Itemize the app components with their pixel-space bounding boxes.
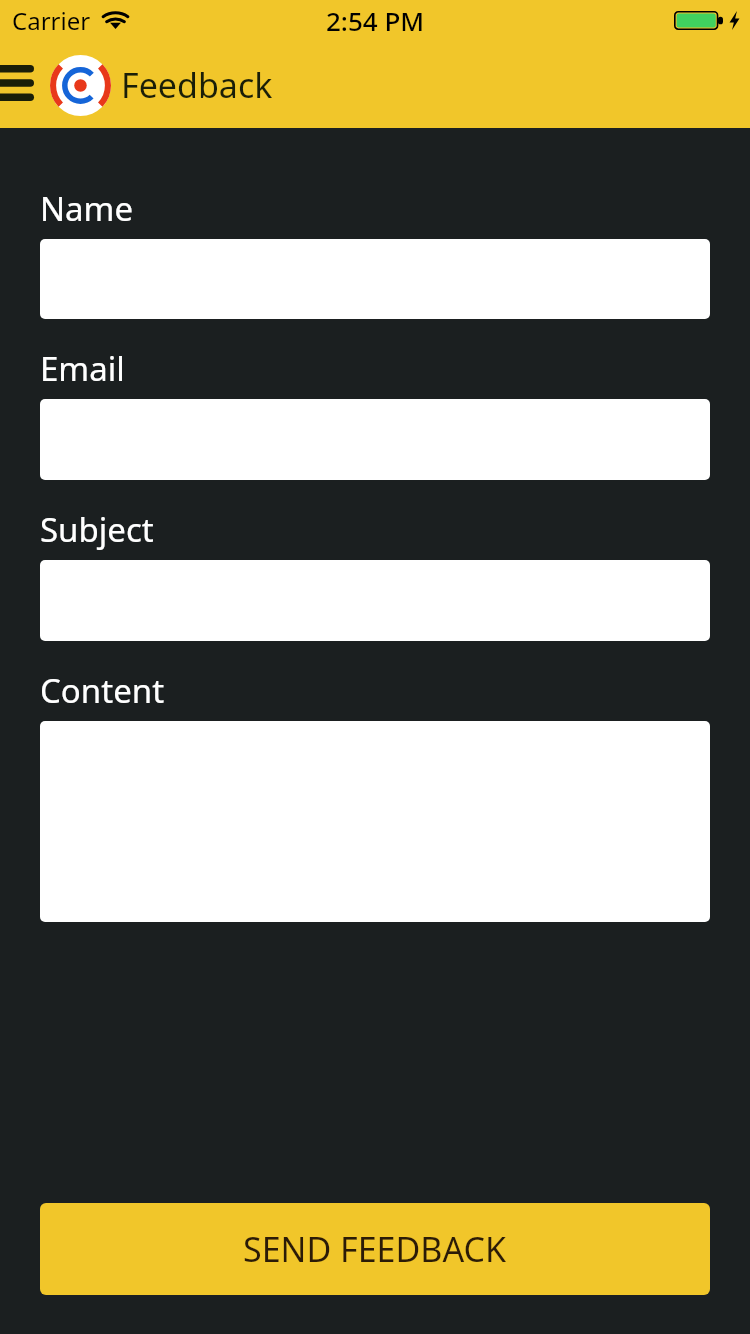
staticText: Carrier [12,4,91,37]
button[interactable]: Open navigation menu [0,44,42,126]
staticText: Content [40,668,165,713]
button[interactable]: Email input field [40,399,710,480]
button[interactable]: Name input field [40,239,710,319]
staticText: 2:54 PM [326,3,425,38]
staticText: Subject [40,507,154,552]
button[interactable]: Subject input field [40,560,710,641]
button[interactable]: SEND FEEDBACK [40,1203,710,1295]
staticText: Email [40,346,125,391]
staticText: Name [40,186,134,231]
staticText: SEND FEEDBACK [243,1226,507,1272]
staticText: Feedback [121,62,273,108]
